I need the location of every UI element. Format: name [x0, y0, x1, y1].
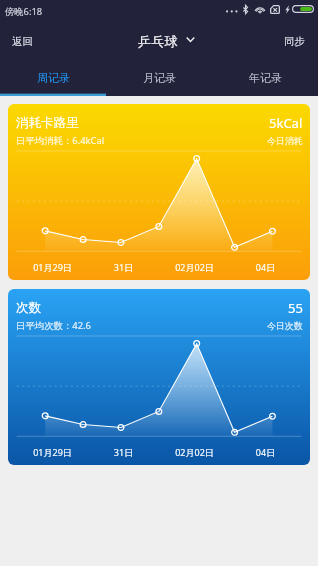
- staticText: 02月02日: [159, 261, 230, 273]
- staticText: 今日次数: [267, 320, 303, 331]
- staticText: 01月29日: [17, 261, 88, 273]
- staticText: 5kCal: [269, 114, 303, 132]
- staticText: 消耗卡路里: [16, 115, 79, 131]
- staticText: 55: [288, 299, 303, 317]
- staticText: 今日消耗: [267, 135, 303, 146]
- staticText: 月记录: [143, 71, 176, 85]
- staticText: 04日: [230, 261, 301, 273]
- button[interactable]: 周记录: [0, 62, 106, 93]
- staticText: 返回: [12, 35, 33, 48]
- staticText: 01月29日: [17, 446, 88, 458]
- staticText: 日平均消耗：6.4kCal: [16, 134, 105, 147]
- staticText: 31日: [88, 261, 159, 273]
- staticText: 31日: [88, 446, 159, 458]
- staticText: 年记录: [249, 71, 282, 85]
- staticText: 周记录: [37, 71, 70, 85]
- staticText: 日平均次数：42.6: [16, 319, 91, 332]
- button[interactable]: 返回: [0, 26, 47, 58]
- button[interactable]: 消耗卡路里: [8, 104, 310, 280]
- staticText: 乒乓球: [138, 33, 178, 50]
- button[interactable]: 次数: [8, 289, 310, 465]
- staticText: 同步: [284, 35, 305, 48]
- staticText: 02月02日: [159, 446, 230, 458]
- button[interactable]: 月记录: [106, 62, 212, 93]
- button[interactable]: 同步: [270, 26, 318, 59]
- button[interactable]: 年记录: [212, 62, 318, 93]
- button[interactable]: 乒乓球: [126, 26, 190, 57]
- staticText: 04日: [230, 446, 301, 458]
- staticText: 次数: [16, 300, 41, 316]
- staticText: 傍晚6:18: [5, 5, 43, 18]
